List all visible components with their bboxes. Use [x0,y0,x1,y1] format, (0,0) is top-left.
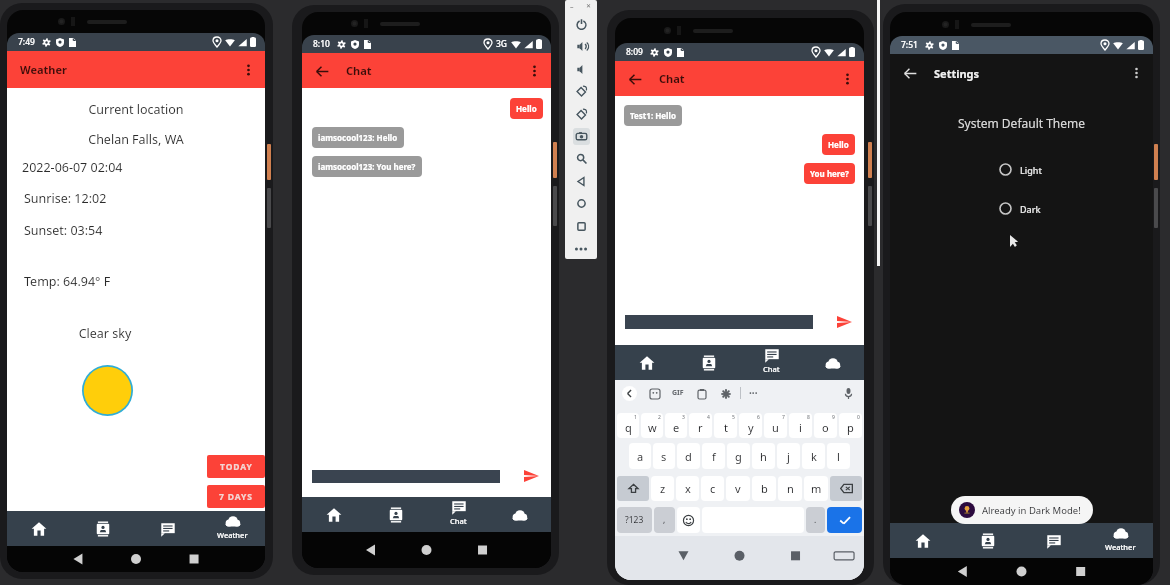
button[interactable]: . [806,507,825,533]
button[interactable]: Emoji [677,507,700,533]
button[interactable]: Home [7,511,71,546]
button[interactable]: Voice input [842,387,855,400]
button[interactable]: Chat [1021,523,1087,558]
button[interactable]: iamsocool123: Hello [312,127,404,148]
button[interactable]: Home [302,497,365,532]
button[interactable]: Chat [427,497,489,532]
button[interactable]: y [739,413,762,438]
button[interactable]: x [676,476,699,501]
button[interactable]: More options [523,60,545,82]
button[interactable]: Emulator control [571,36,591,56]
button[interactable]: , [654,507,675,533]
staticText: w [648,420,657,435]
button[interactable]: iamsocool123: You here? [312,156,422,177]
button[interactable]: You here? [804,163,855,184]
staticText: Clear sky [7,325,203,342]
button[interactable]: Contacts [955,523,1021,558]
button[interactable]: j [777,443,800,469]
button[interactable]: More options [237,59,259,81]
button[interactable]: Weather [489,497,551,532]
button[interactable]: k [802,443,825,469]
button[interactable]: Light [890,163,1153,176]
staticText: Hello [828,139,849,150]
staticText: 7:51 [901,39,918,51]
button[interactable]: Hello [510,98,543,119]
button[interactable]: Back [898,61,922,85]
button[interactable]: t [714,413,737,438]
button[interactable]: Weather [802,345,864,380]
button[interactable]: w [641,413,663,438]
staticText: . [814,514,817,526]
button[interactable]: Weather [200,511,265,546]
button[interactable]: Collapse [622,386,637,401]
staticText: j [787,449,790,464]
button[interactable]: More [572,240,590,258]
button[interactable]: Emulator control [571,126,591,146]
staticText: 2022-06-07 02:04 [22,159,123,176]
button[interactable]: Backspace [830,476,862,501]
staticText: 7 [782,414,785,421]
button[interactable]: Chat [135,511,200,546]
button[interactable]: z [651,476,674,501]
button[interactable]: TODAY [207,455,265,478]
button[interactable]: ?123 [617,507,652,533]
button[interactable]: b [752,476,776,501]
button[interactable]: Contacts [71,511,135,546]
button[interactable]: Clipboard [695,387,708,400]
button[interactable]: q [617,413,639,438]
staticText: Chat [763,364,780,374]
button[interactable]: Emulator control [571,216,591,236]
button[interactable]: Enter [827,507,862,533]
button[interactable]: a [629,443,651,469]
button[interactable]: Home [615,345,678,380]
button[interactable]: Already in Dark Mode! [951,496,1093,524]
button[interactable]: Weather [1087,523,1153,558]
button[interactable]: Dark [890,202,1153,215]
button[interactable]: c [701,476,724,501]
button[interactable]: Test1: Hello [624,105,682,126]
button[interactable]: Emulator control [571,171,591,191]
button[interactable]: Home [890,523,955,558]
button[interactable]: m [804,476,828,501]
button[interactable]: Emulator control [571,104,591,124]
button[interactable]: More options [1125,62,1147,84]
button[interactable]: Settings [719,387,732,400]
button[interactable]: Contacts [365,497,427,532]
button[interactable]: o [814,413,837,438]
button[interactable]: 7 DAYS [207,485,265,508]
button[interactable]: p [839,413,862,438]
button[interactable]: l [827,443,850,469]
button[interactable]: Hello [822,134,855,155]
button[interactable]: Emulator control [571,81,591,101]
button[interactable]: u [764,413,787,438]
staticText: x [685,481,691,496]
button[interactable]: Emulator control [571,193,591,213]
button[interactable]: Shift [617,476,649,501]
button[interactable]: Weather [7,51,265,88]
button[interactable]: Emulator control [571,14,591,34]
button[interactable]: f [702,443,725,469]
button[interactable]: Send [520,465,542,487]
button[interactable]: g [727,443,750,469]
button[interactable]: Emulator control [571,148,591,168]
button[interactable]: Back [310,59,334,83]
button[interactable]: Emulator control [571,59,591,79]
button[interactable]: r [689,413,712,438]
button[interactable]: d [677,443,700,469]
staticText: iamsocool123: You here? [318,161,416,172]
button[interactable]: Back [623,67,647,91]
button[interactable]: More options [836,68,858,90]
button[interactable]: h [752,443,775,469]
button[interactable]: n [778,476,802,501]
button[interactable]: Contacts [678,345,740,380]
button[interactable]: e [665,413,687,438]
button[interactable]: Stickers [648,387,661,400]
button[interactable]: Send [833,311,855,333]
button[interactable]: Chat [740,345,802,380]
button[interactable]: s [653,443,675,469]
button[interactable]: v [726,476,750,501]
button[interactable]: i [789,413,812,438]
